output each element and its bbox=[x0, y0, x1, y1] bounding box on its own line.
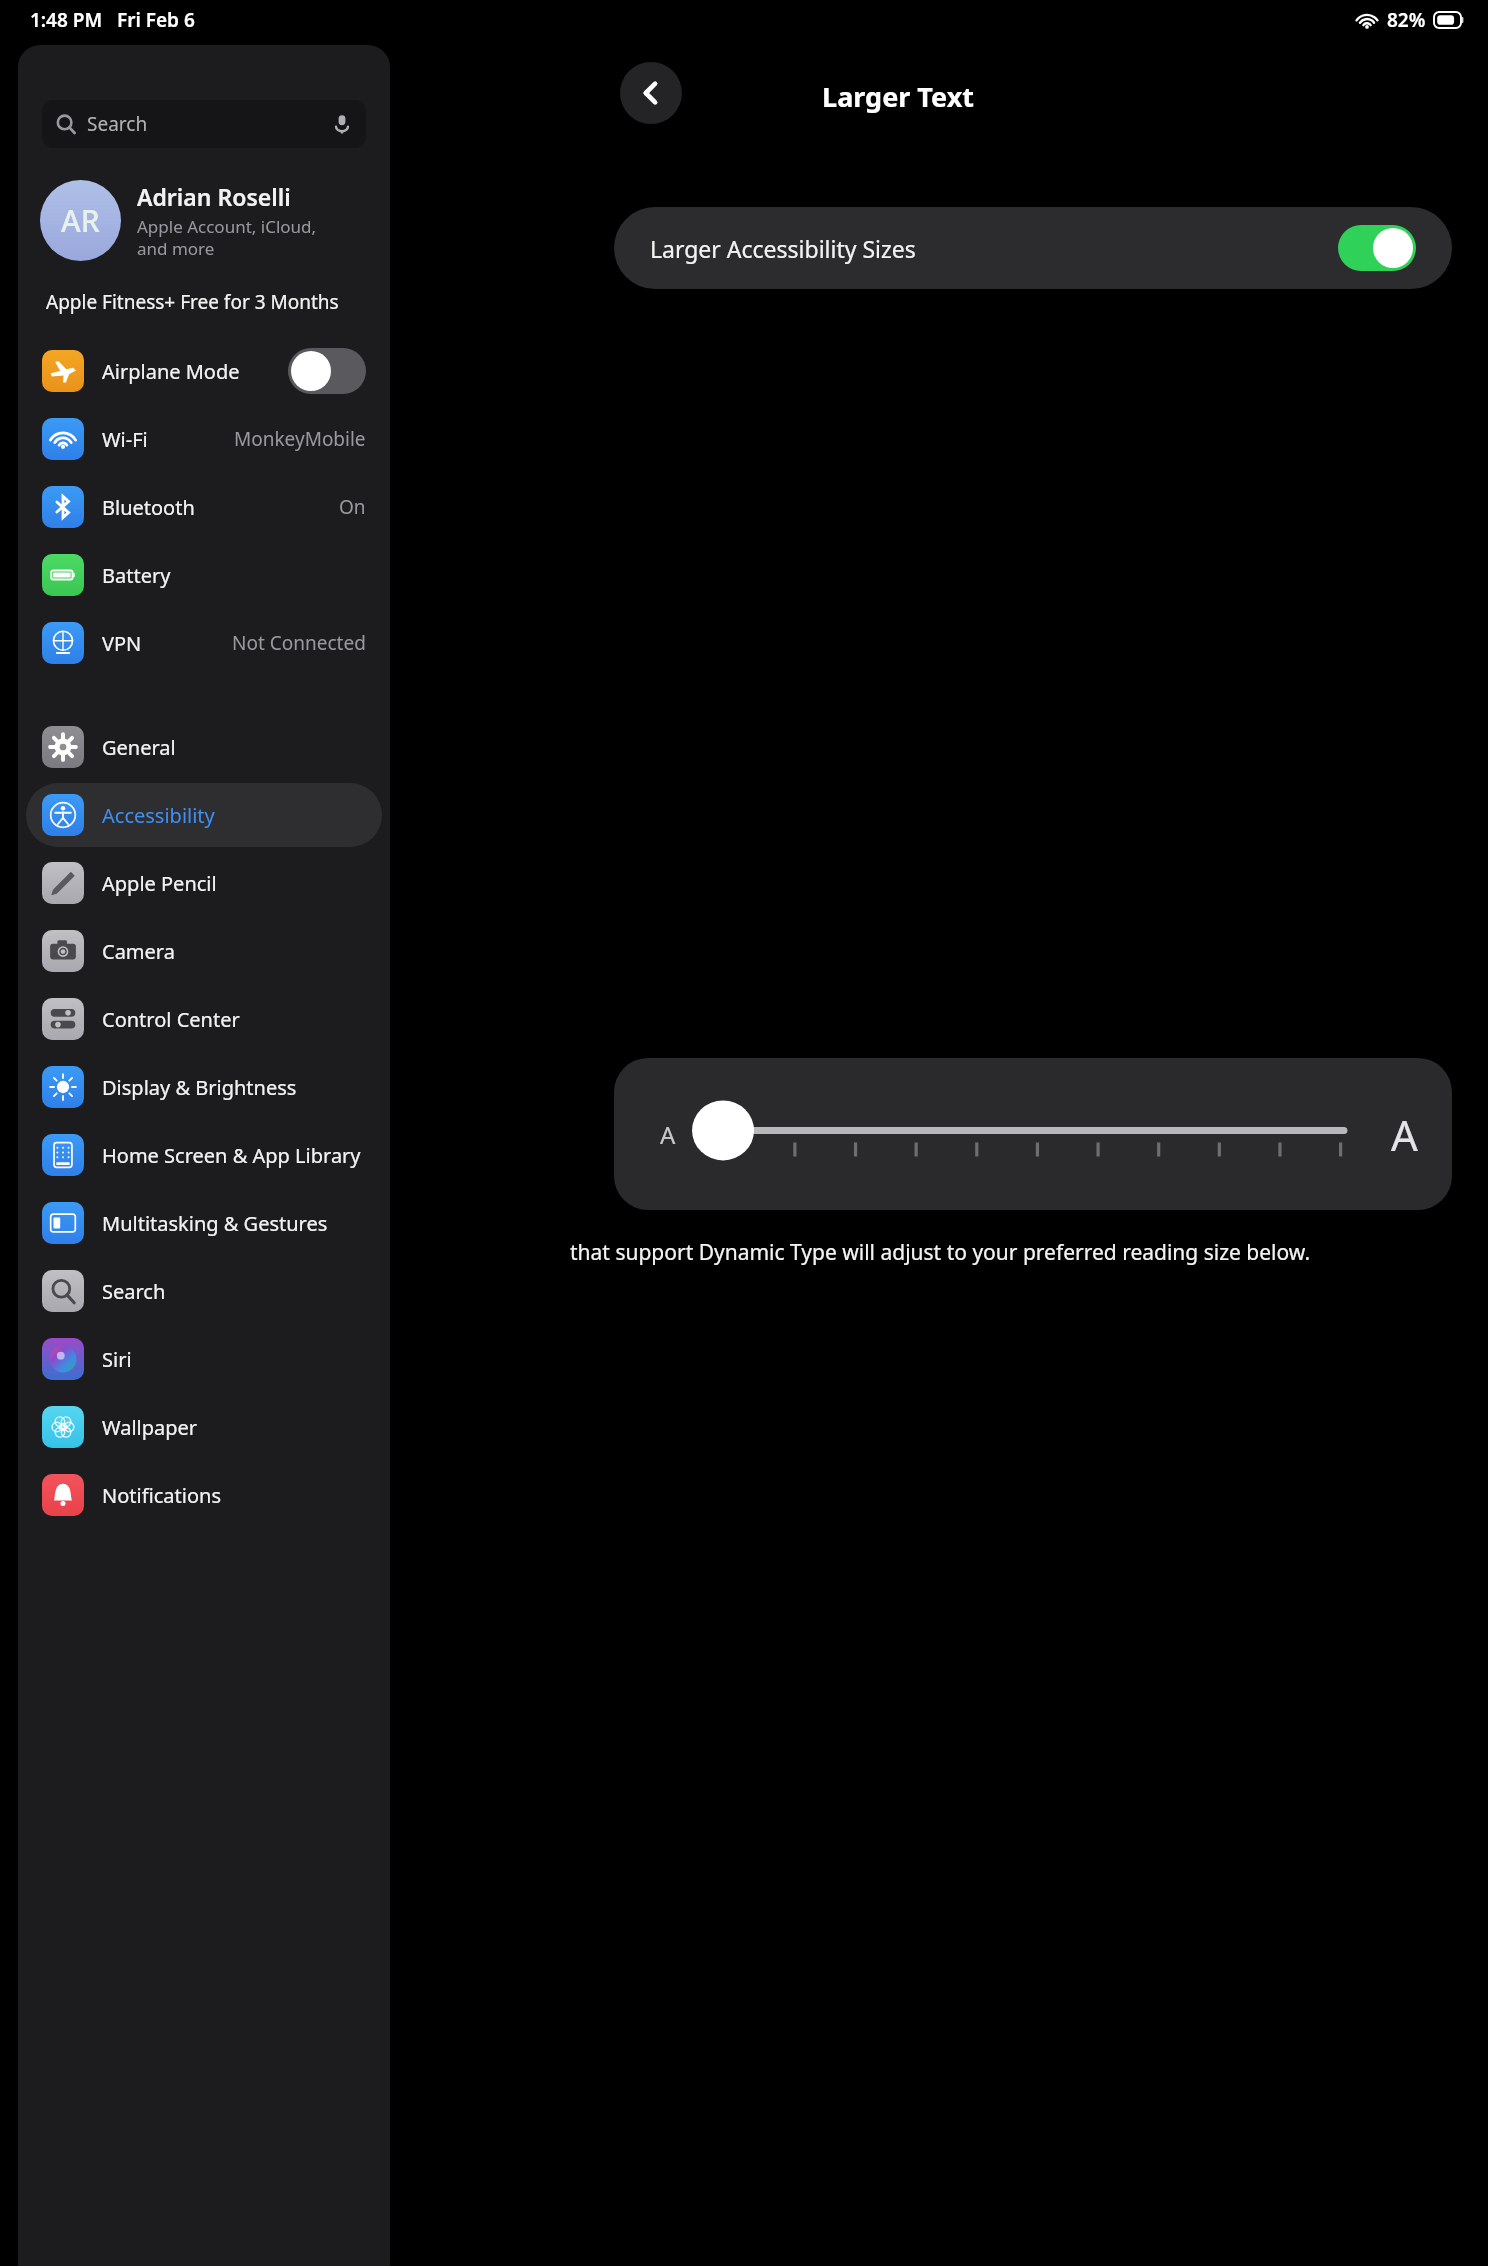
button[interactable]: Apple Pencil bbox=[26, 851, 382, 915]
button[interactable]: VPN bbox=[26, 611, 382, 675]
staticText: Home Screen & App Library bbox=[102, 1142, 361, 1169]
button[interactable]: Home Screen & App Library bbox=[26, 1123, 382, 1187]
button[interactable]: Battery bbox=[26, 543, 382, 607]
button[interactable]: Larger Accessibility Sizes bbox=[614, 207, 1452, 289]
staticText: AR bbox=[61, 200, 100, 241]
staticText: Apple Fitness+ Free for 3 Months bbox=[46, 289, 339, 315]
button[interactable]: Airplane Mode toggle bbox=[288, 348, 366, 394]
staticText: Battery bbox=[102, 562, 171, 589]
button[interactable]: Search bbox=[26, 1259, 382, 1323]
button[interactable]: Text size slider bbox=[684, 1089, 1354, 1179]
button[interactable]: Apple Fitness+ Free for 3 Months bbox=[18, 289, 390, 315]
staticText: VPN bbox=[102, 630, 142, 657]
staticText: Display & Brightness bbox=[102, 1074, 297, 1101]
staticText: Search bbox=[87, 111, 148, 137]
button[interactable]: Control Center bbox=[26, 987, 382, 1051]
staticText: Fri Feb 6 bbox=[117, 7, 195, 33]
button[interactable]: Notifications bbox=[26, 1463, 382, 1527]
staticText: Wi-Fi bbox=[102, 426, 148, 453]
button[interactable]: Multitasking & Gestures bbox=[26, 1191, 382, 1255]
button[interactable]: Wallpaper bbox=[26, 1395, 382, 1459]
button[interactable]: Display & Brightness bbox=[26, 1055, 382, 1119]
staticText: MonkeyMobile bbox=[234, 426, 366, 452]
staticText: Search bbox=[102, 1278, 166, 1305]
button[interactable]: Larger Accessibility Sizes toggle bbox=[1338, 225, 1416, 271]
button[interactable]: Search bbox=[42, 100, 366, 148]
staticText: Control Center bbox=[102, 1006, 240, 1033]
staticText: Larger Text bbox=[822, 78, 974, 115]
button[interactable]: Accessibility bbox=[26, 783, 382, 847]
staticText: Notifications bbox=[102, 1482, 221, 1509]
staticText: Siri bbox=[102, 1346, 132, 1373]
button[interactable]: AR bbox=[18, 174, 390, 267]
staticText: General bbox=[102, 734, 176, 761]
staticText: Accessibility bbox=[102, 802, 215, 829]
button[interactable]: Camera bbox=[26, 919, 382, 983]
staticText: Larger Accessibility Sizes bbox=[650, 233, 916, 264]
staticText: Apple Pencil bbox=[102, 870, 217, 897]
staticText: Bluetooth bbox=[102, 494, 195, 521]
button[interactable]: General bbox=[26, 715, 382, 779]
staticText: Airplane Mode bbox=[102, 358, 240, 385]
button[interactable]: Siri bbox=[26, 1327, 382, 1391]
staticText: Multitasking & Gestures bbox=[102, 1210, 328, 1237]
staticText: Wallpaper bbox=[102, 1414, 198, 1441]
button[interactable]: Back bbox=[620, 62, 682, 124]
staticText: A bbox=[660, 1118, 676, 1151]
staticText: that support Dynamic Type will adjust to… bbox=[570, 1238, 1311, 1267]
button[interactable]: Wi-Fi bbox=[26, 407, 382, 471]
staticText: Camera bbox=[102, 938, 175, 965]
staticText: Adrian Roselli bbox=[137, 181, 291, 212]
button[interactable]: Airplane Mode bbox=[26, 339, 382, 403]
staticText: Apple Account, iCloud, and more bbox=[137, 215, 317, 260]
staticText: On bbox=[339, 494, 366, 520]
staticText: Not Connected bbox=[232, 630, 366, 656]
button[interactable]: Bluetooth bbox=[26, 475, 382, 539]
staticText: 1:48 PM bbox=[30, 7, 103, 33]
staticText: 82% bbox=[1387, 7, 1426, 33]
staticText: A bbox=[1391, 1106, 1418, 1163]
